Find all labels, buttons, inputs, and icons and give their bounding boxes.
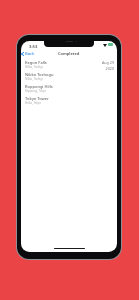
staticText: Kegon Falls	[25, 60, 47, 65]
staticText: Tokyo Tower	[25, 96, 49, 101]
staticText: Roppongi Hills	[25, 84, 53, 89]
staticText: Shiba, Tokyo	[25, 101, 41, 105]
button[interactable]: Roppongi Hills	[21, 82, 117, 94]
staticText: Nikko Toshogu	[25, 72, 54, 77]
staticText: Roppongi, Tokyo	[25, 89, 47, 93]
staticText: Completed	[58, 51, 80, 56]
staticText: Nikko, Tochigi	[25, 77, 43, 81]
staticText: Back	[25, 51, 35, 57]
button[interactable]: Tokyo Tower	[21, 94, 117, 106]
staticText: Nikko, Tochigi	[25, 65, 43, 69]
staticText: 3:53	[29, 44, 38, 50]
staticText: Aug 29	[101, 60, 114, 65]
button[interactable]: Back	[21, 49, 37, 59]
staticText: 2020	[105, 66, 114, 71]
button[interactable]: Kegon Falls	[21, 58, 117, 70]
button[interactable]: Nikko Toshogu	[21, 70, 117, 82]
